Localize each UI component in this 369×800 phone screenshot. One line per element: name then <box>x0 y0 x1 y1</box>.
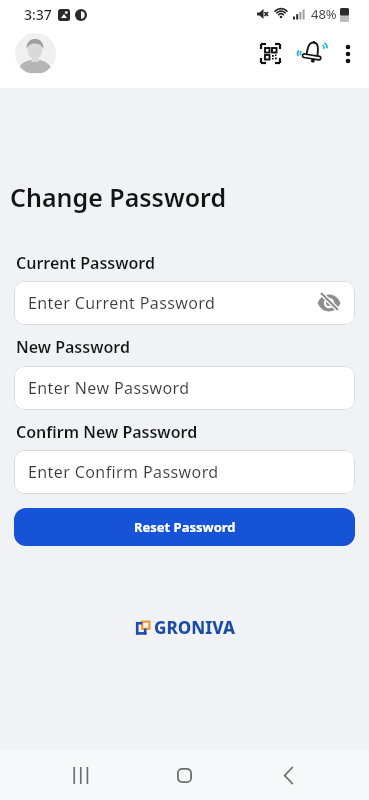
button[interactable] <box>284 767 293 784</box>
button[interactable]: Enter Current Password <box>14 281 355 325</box>
staticText: Reset Password <box>134 518 236 536</box>
staticText: Current Password <box>16 252 155 274</box>
button[interactable] <box>344 43 352 65</box>
button[interactable]: Enter Confirm Password <box>14 450 355 494</box>
staticText: Confirm New Password <box>16 421 198 443</box>
button[interactable] <box>73 767 89 784</box>
button[interactable] <box>15 33 56 74</box>
staticText: GRONIVA <box>154 616 235 639</box>
button[interactable]: Reset Password <box>14 508 355 546</box>
button[interactable] <box>297 38 328 69</box>
staticText: Enter Confirm Password <box>28 461 219 483</box>
staticText: 48% <box>311 5 337 23</box>
button[interactable]: Enter New Password <box>14 366 355 410</box>
staticText: Enter New Password <box>28 377 190 399</box>
button[interactable] <box>260 43 281 64</box>
staticText: New Password <box>16 336 130 358</box>
button[interactable] <box>177 768 192 783</box>
staticText: Change Password <box>10 180 227 214</box>
staticText: Enter Current Password <box>28 292 216 314</box>
staticText: 3:37 <box>24 5 52 24</box>
